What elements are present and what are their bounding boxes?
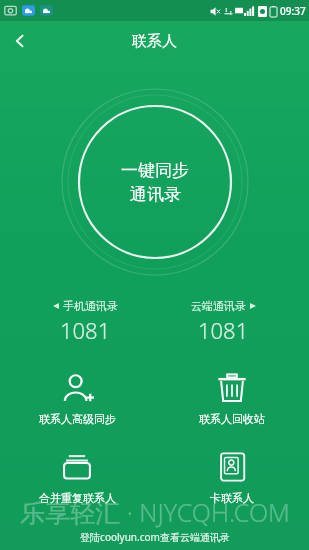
staticText: 卡联系人 (210, 491, 254, 505)
staticText: 一键同步 (121, 160, 189, 181)
button[interactable]: 联系人回收站 (154, 367, 309, 430)
staticText: 联系人高级同步 (39, 412, 116, 426)
staticText: 云端通讯录 (191, 299, 246, 313)
staticText: 1081 (60, 315, 111, 345)
button[interactable]: 合并重复联系人 (0, 446, 154, 509)
staticText: 乐享轻汇 · NJYCQH.COM (20, 495, 290, 529)
button[interactable]: 联系人高级同步 (0, 367, 154, 430)
button[interactable]: 手机通讯录 (16, 299, 154, 345)
button[interactable]: 云端通讯录 (154, 299, 293, 345)
button[interactable]: 卡联系人 (154, 446, 309, 509)
staticText: 09:37 (280, 4, 306, 18)
staticText: 通讯录 (130, 184, 181, 205)
button[interactable]: Back (0, 21, 40, 61)
staticText: 合并重复联系人 (39, 491, 116, 505)
staticText: 1081 (198, 315, 249, 345)
staticText: 登陆coolyun.com查看云端通讯录 (80, 530, 230, 544)
staticText: 手机通讯录 (63, 299, 118, 313)
button[interactable]: 一键同步 (60, 87, 250, 277)
staticText: 联系人 (132, 32, 177, 51)
staticText: 联系人回收站 (199, 412, 265, 426)
